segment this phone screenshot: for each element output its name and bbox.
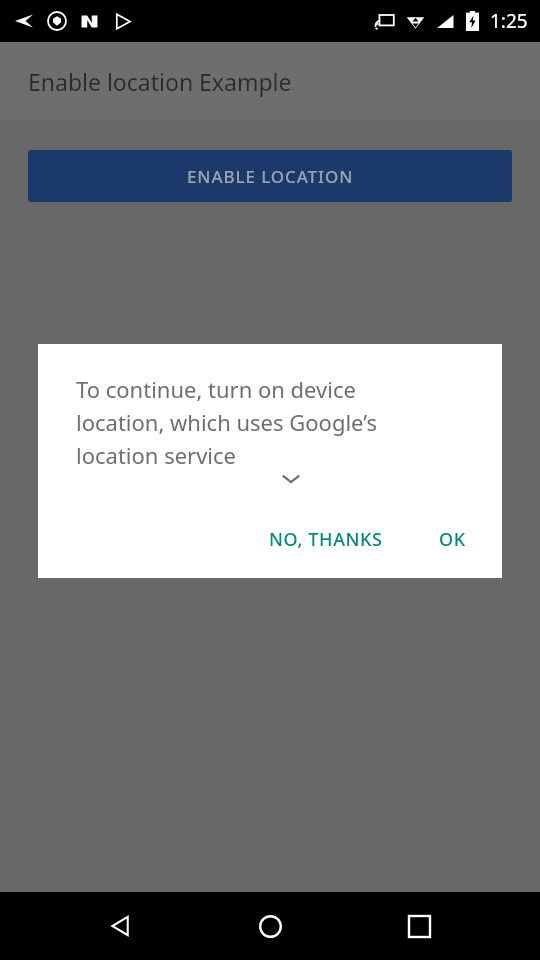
staticText: OK	[439, 527, 466, 552]
button[interactable]: Recent apps	[391, 898, 447, 954]
button[interactable]: Home	[242, 898, 298, 954]
staticText: NO, THANKS	[269, 527, 383, 552]
staticText: ENABLE LOCATION	[187, 165, 354, 188]
staticText: To continue, turn on device location, wh…	[76, 374, 378, 470]
button[interactable]: Back	[93, 898, 149, 954]
button[interactable]: NO, THANKS	[255, 515, 397, 564]
button[interactable]: ENABLE LOCATION	[28, 150, 512, 202]
staticText: 1:25	[490, 8, 528, 34]
button[interactable]: OK	[425, 515, 480, 564]
staticText: Enable location Example	[28, 66, 292, 97]
